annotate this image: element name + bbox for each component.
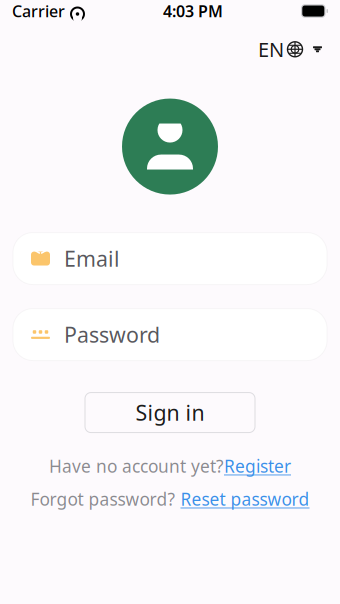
staticText: EN xyxy=(258,36,284,63)
button[interactable]: Sign in xyxy=(85,393,255,433)
staticText: Register xyxy=(224,455,291,478)
staticText: Sign in xyxy=(135,398,204,427)
staticText: Have no account yet? xyxy=(49,455,224,478)
staticText: Carrier xyxy=(12,0,65,22)
staticText: Password xyxy=(64,320,160,349)
staticText: Reset password xyxy=(180,488,309,511)
button[interactable]: Reset password xyxy=(180,488,309,511)
button[interactable]: Select language, English xyxy=(254,30,326,69)
staticText: Forgot password? xyxy=(30,488,175,511)
button[interactable]: Email xyxy=(13,233,327,285)
staticText: Email xyxy=(64,244,120,273)
button[interactable]: Register xyxy=(224,455,291,478)
button[interactable]: Password xyxy=(13,309,327,361)
staticText: 4:03 PM xyxy=(163,0,223,22)
